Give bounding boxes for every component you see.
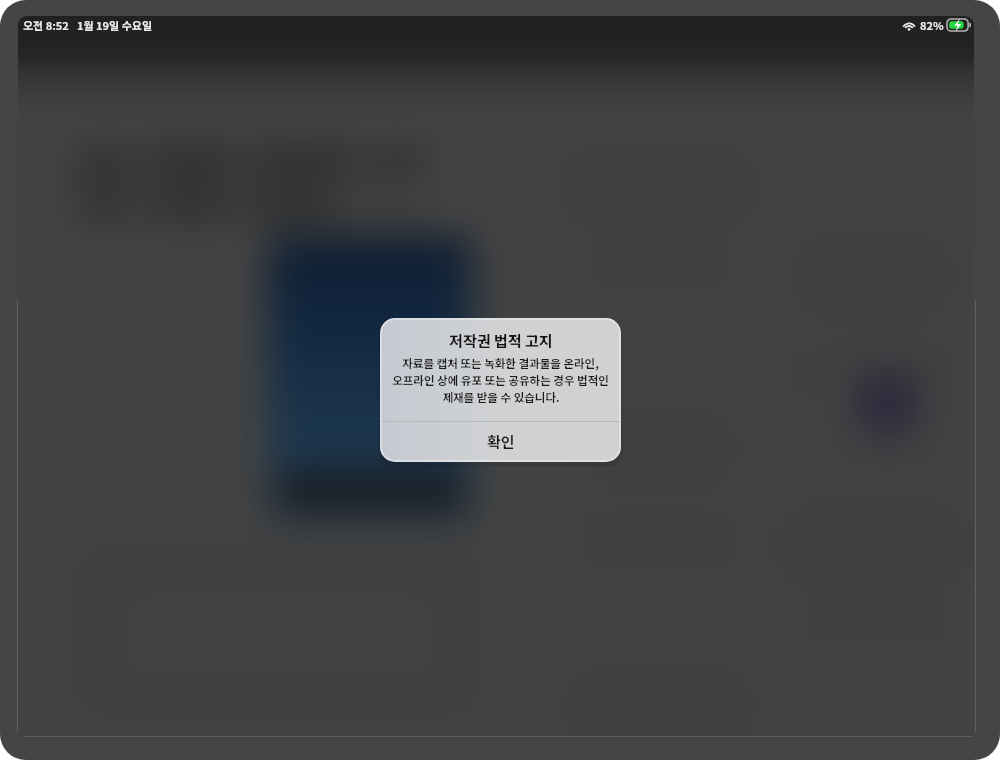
button[interactable]: Wi-Fi xyxy=(902,20,916,31)
staticText: 제재를 받을 수 있습니다. xyxy=(442,389,560,406)
staticText: 오프라인 상에 유포 또는 공유하는 경우 법적인 xyxy=(392,372,609,389)
staticText: 저작권 법적 고지 xyxy=(449,330,553,352)
button[interactable]: Battery charging 82 percent xyxy=(947,19,971,31)
staticText: 오전 8:52 xyxy=(23,17,69,33)
staticText: 1월 19일 수요일 xyxy=(77,17,153,33)
staticText: 82% xyxy=(920,17,944,33)
staticText: 자료를 캡처 또는 녹화한 결과물을 온라인, xyxy=(402,355,599,372)
button[interactable]: 확인 xyxy=(380,422,621,462)
staticText: 확인 xyxy=(487,431,515,453)
